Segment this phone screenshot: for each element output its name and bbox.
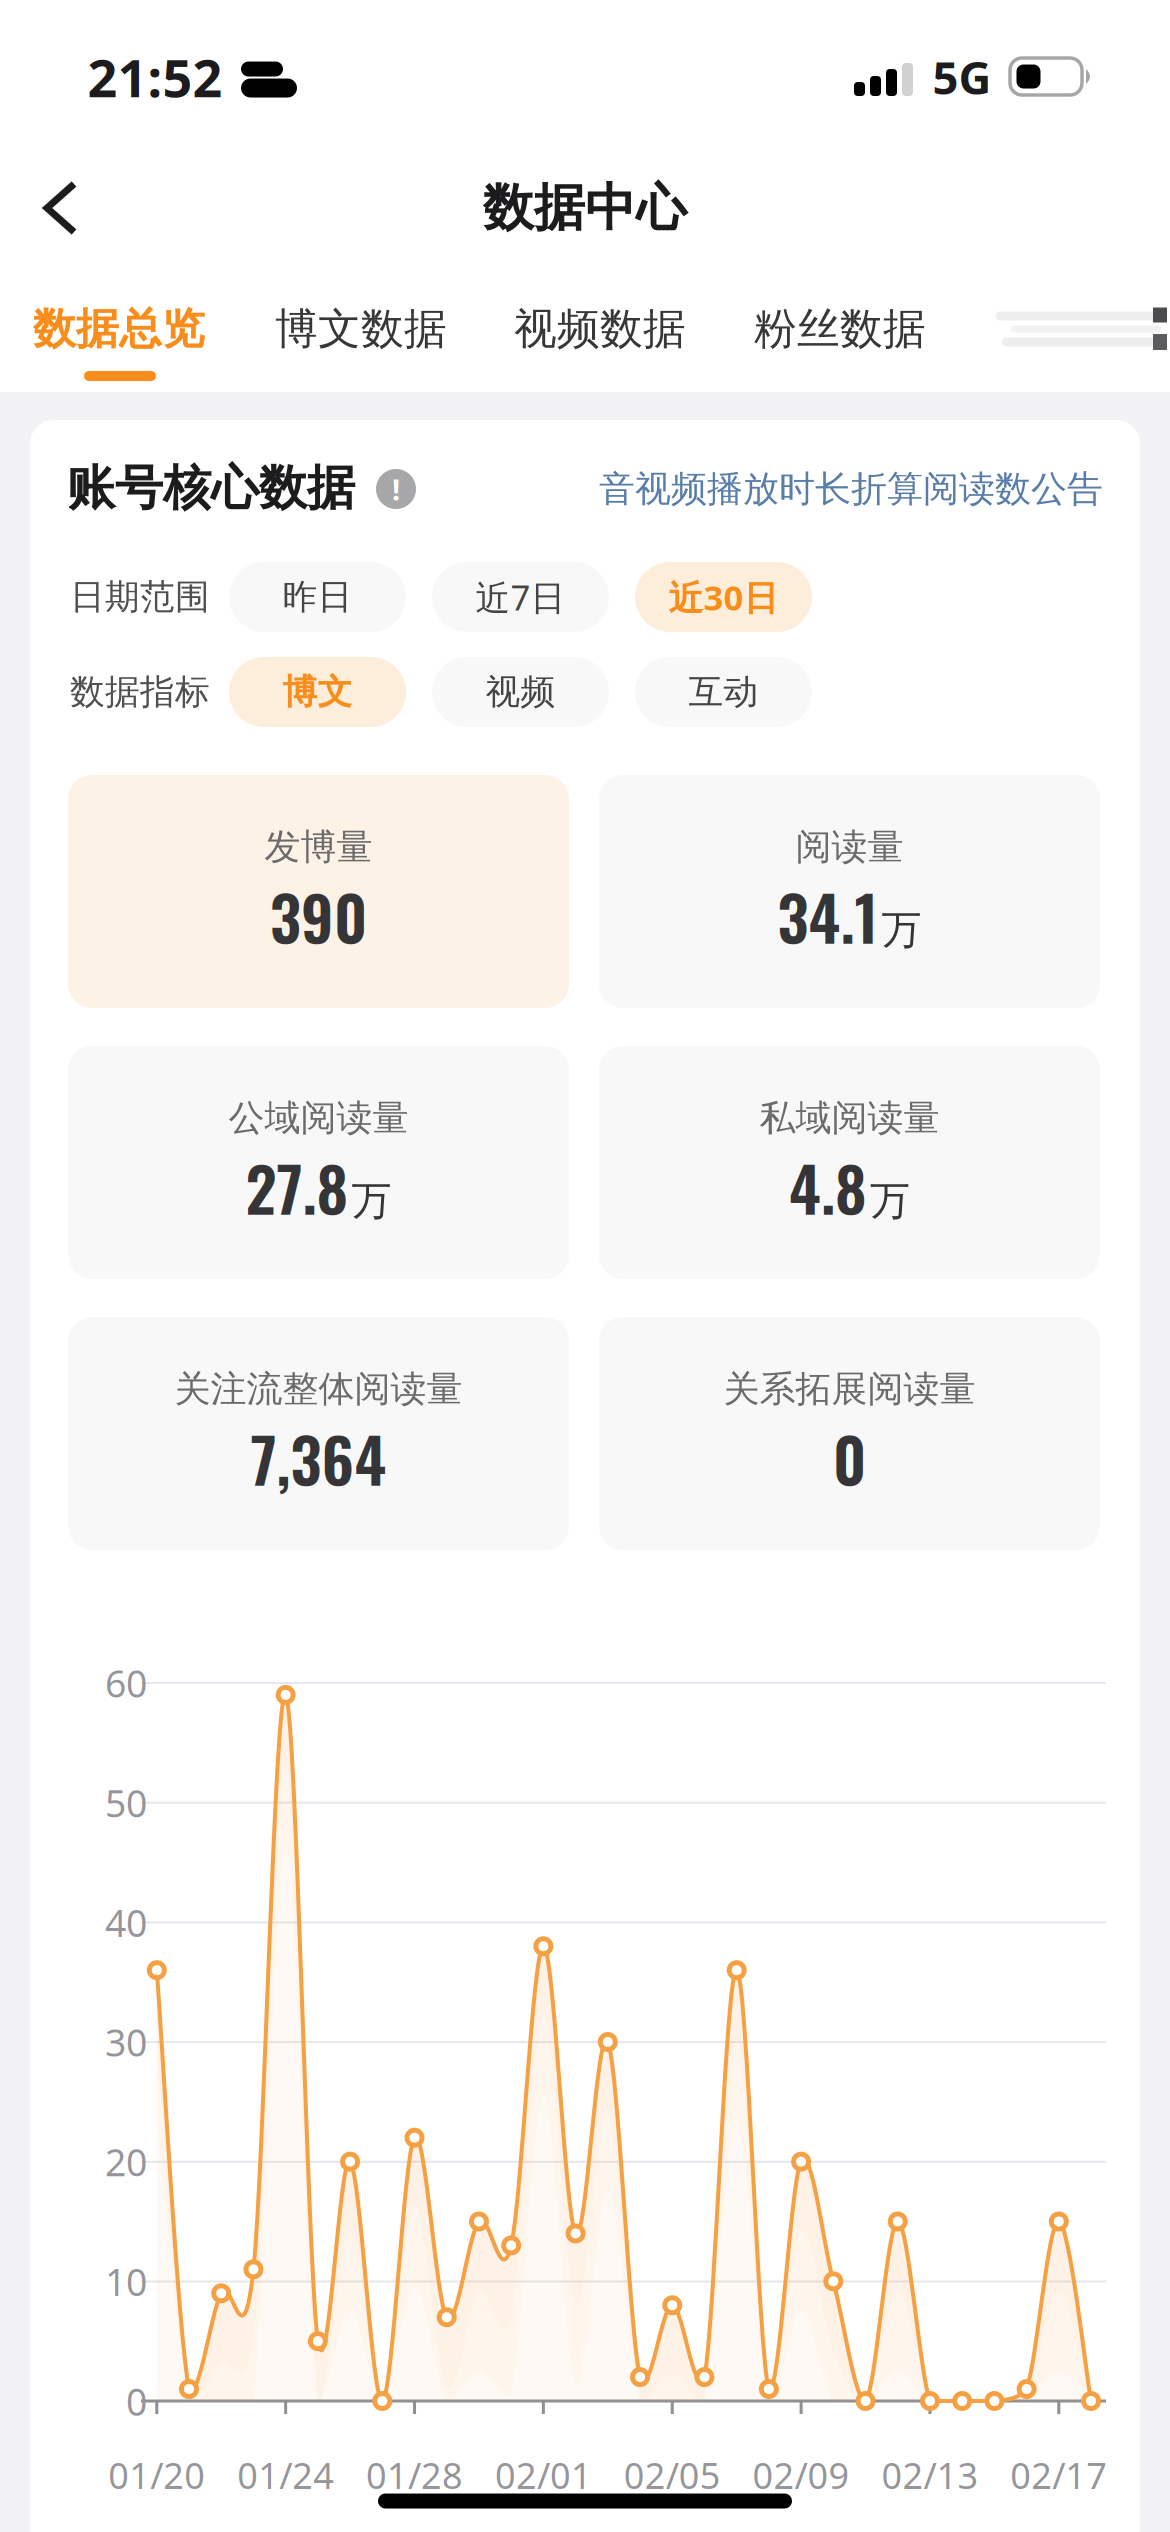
staticText: 40 (105, 1898, 147, 1947)
staticText: 390 (270, 871, 367, 961)
staticText: 粉丝数据 (754, 303, 926, 355)
button[interactable]: 数据总览 (6, 284, 232, 374)
staticText: 0 (126, 2376, 147, 2426)
staticText: 数据中心 (483, 177, 687, 239)
button[interactable]: 博文 (229, 657, 406, 727)
staticText: 27.8 (245, 1142, 348, 1232)
staticText: 公域阅读量 (228, 1096, 408, 1140)
staticText: 01/28 (366, 2451, 463, 2499)
staticText: 阅读量 (795, 825, 903, 869)
button[interactable]: 互动 (635, 657, 812, 727)
staticText: 7,364 (250, 1413, 386, 1503)
staticText: 关注流整体阅读量 (174, 1367, 462, 1411)
staticText: 5G (932, 47, 991, 107)
staticText: 34.1 (777, 871, 878, 961)
staticText: 50 (105, 1778, 147, 1827)
staticText: 01/20 (108, 2451, 205, 2499)
staticText: 近30日 (668, 574, 778, 620)
staticText: 视频数据 (514, 303, 686, 355)
staticText: 视频 (485, 671, 555, 713)
button[interactable]: 账号核心数据说明 (368, 461, 424, 517)
staticText: 20 (105, 2137, 147, 2187)
staticText: 发博量 (264, 825, 372, 869)
button[interactable]: 视频 (432, 657, 609, 727)
staticText: 30 (105, 2017, 147, 2067)
button[interactable]: 近30日 (635, 562, 812, 632)
staticText: 01/24 (237, 2451, 334, 2499)
staticText: 万 (351, 1176, 391, 1225)
button[interactable]: 私域阅读量 (599, 1046, 1100, 1279)
staticText: 10 (105, 2257, 147, 2306)
button[interactable]: 公域阅读量 (68, 1046, 569, 1279)
staticText: 万 (870, 1176, 910, 1225)
staticText: 02/09 (753, 2451, 850, 2499)
staticText: 音视频播放时长折算阅读数公告 (599, 467, 1103, 511)
staticText: 互动 (688, 671, 758, 713)
staticText: 账号核心数据 (67, 458, 355, 517)
button[interactable]: 近7日 (432, 562, 609, 632)
staticText: 私域阅读量 (759, 1096, 939, 1140)
staticText: 博文 (282, 671, 352, 713)
button[interactable]: 音视频播放时长折算阅读数公告 (523, 467, 1103, 511)
button[interactable]: 视频数据 (487, 284, 713, 374)
staticText: 数据指标 (70, 671, 210, 713)
staticText: 0 (833, 1413, 866, 1503)
staticText: ! (392, 469, 400, 508)
staticText: 昨日 (282, 576, 352, 618)
staticText: 关系拓展阅读量 (723, 1367, 975, 1411)
staticText: 4.8 (789, 1142, 867, 1232)
staticText: 02/01 (495, 2451, 592, 2499)
staticText: 数据总览 (33, 303, 205, 355)
button[interactable]: 发博量 (68, 775, 569, 1008)
button[interactable]: 关系拓展阅读量 (599, 1317, 1100, 1550)
staticText: 60 (105, 1658, 147, 1708)
staticText: 02/13 (881, 2451, 978, 2499)
button[interactable]: 阅读量 (599, 775, 1100, 1008)
button[interactable]: 粉丝数据 (727, 284, 953, 374)
staticText: 近7日 (475, 574, 565, 620)
staticText: 万 (881, 905, 921, 954)
staticText: 日期范围 (70, 576, 210, 618)
staticText: 02/17 (1010, 2451, 1107, 2499)
button[interactable]: 博文数据 (248, 284, 474, 374)
staticText: 21:52 (87, 42, 222, 112)
staticText: 02/05 (624, 2451, 721, 2499)
button[interactable]: 昨日 (229, 562, 406, 632)
staticText: 博文数据 (275, 303, 447, 355)
button[interactable]: 关注流整体阅读量 (68, 1317, 569, 1550)
button[interactable]: 返回 (0, 153, 110, 263)
